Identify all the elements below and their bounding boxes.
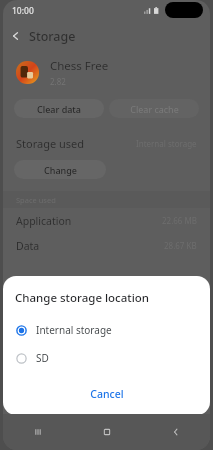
staticText: Storage used [16,136,85,151]
staticText: SD [36,351,49,365]
button[interactable]: Back [141,414,210,450]
button[interactable]: Change [14,160,106,179]
staticText: Clear cache [130,103,179,115]
staticText: 28.67 KB [164,240,197,251]
button[interactable]: Internal storage [3,319,210,341]
staticText: Internal storage [36,323,112,337]
staticText: Internal storage [136,138,197,149]
staticText: Cancel [90,387,124,401]
button[interactable]: Clear cache [109,99,199,118]
staticText: 2.82 [50,76,66,87]
staticText: Change [44,164,77,176]
staticText: Change storage location [15,290,150,306]
button[interactable]: Clear data [14,99,104,118]
staticText: Chess Free [50,58,109,74]
staticText: Data [16,239,40,253]
button[interactable]: Data [3,233,210,258]
button[interactable]: SD [3,347,210,369]
staticText: Application [16,214,72,228]
button[interactable]: Application [3,208,210,233]
staticText: 22.66 MB [162,215,197,226]
staticText: Clear data [37,103,81,115]
button[interactable]: Cancel [3,381,210,407]
button[interactable]: Recent apps [3,414,72,450]
staticText: Storage [29,28,76,45]
button[interactable]: Home [72,414,141,450]
button[interactable]: Navigate up [3,23,29,49]
staticText: Space used [16,195,56,205]
staticText: 10:00 [12,5,34,17]
